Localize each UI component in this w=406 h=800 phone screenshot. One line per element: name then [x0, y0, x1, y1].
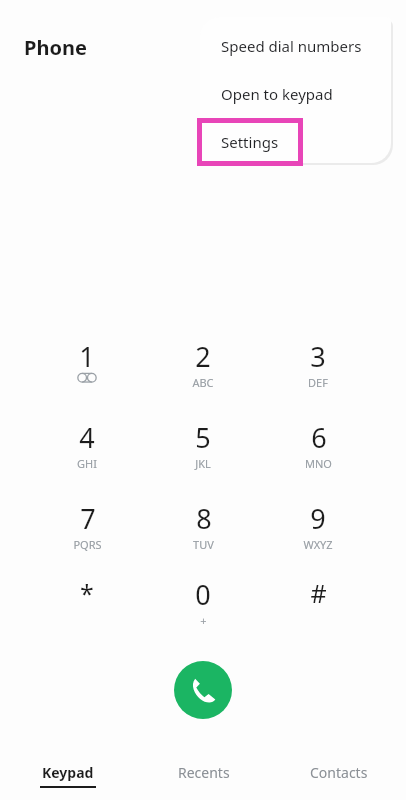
- staticText: GHI: [77, 456, 97, 471]
- staticText: Settings: [221, 132, 279, 152]
- staticText: 8: [196, 500, 212, 537]
- button[interactable]: *: [43, 576, 131, 638]
- button[interactable]: 5: [159, 419, 247, 481]
- button[interactable]: #: [274, 576, 362, 638]
- staticText: 7: [80, 500, 96, 537]
- staticText: +: [200, 613, 207, 628]
- staticText: 2: [195, 338, 211, 375]
- button[interactable]: 9: [274, 500, 362, 562]
- staticText: WXYZ: [303, 537, 333, 552]
- staticText: #: [310, 576, 327, 610]
- staticText: Speed dial numbers: [221, 36, 362, 56]
- button[interactable]: Open to keypad: [200, 70, 391, 118]
- button[interactable]: 7: [43, 500, 131, 562]
- staticText: 5: [195, 419, 211, 456]
- button[interactable]: Contacts: [271, 752, 406, 800]
- button[interactable]: 1: [43, 338, 131, 400]
- button[interactable]: Call: [174, 661, 232, 719]
- staticText: Keypad: [42, 763, 94, 782]
- staticText: 0: [195, 576, 211, 613]
- staticText: JKL: [195, 456, 211, 471]
- staticText: 9: [310, 500, 326, 537]
- button[interactable]: 6: [274, 419, 362, 481]
- button[interactable]: Keypad: [0, 752, 136, 800]
- staticText: *: [80, 576, 94, 610]
- button[interactable]: Settings: [200, 118, 391, 163]
- staticText: MNO: [305, 456, 332, 471]
- staticText: 1: [79, 338, 95, 375]
- staticText: Open to keypad: [221, 84, 333, 104]
- button[interactable]: 2: [159, 338, 247, 400]
- staticText: 3: [310, 338, 326, 375]
- staticText: Phone: [24, 34, 87, 61]
- staticText: PQRS: [73, 537, 102, 552]
- staticText: DEF: [308, 375, 328, 390]
- button[interactable]: 4: [43, 419, 131, 481]
- staticText: 4: [79, 419, 95, 456]
- staticText: ABC: [192, 375, 214, 390]
- staticText: 6: [311, 419, 327, 456]
- button[interactable]: 8: [159, 500, 247, 562]
- staticText: TUV: [193, 537, 214, 552]
- button[interactable]: 3: [274, 338, 362, 400]
- button[interactable]: Speed dial numbers: [200, 22, 391, 70]
- button[interactable]: Recents: [136, 752, 271, 800]
- staticText: Recents: [178, 763, 230, 782]
- staticText: Contacts: [310, 763, 368, 782]
- button[interactable]: 0: [159, 576, 247, 638]
